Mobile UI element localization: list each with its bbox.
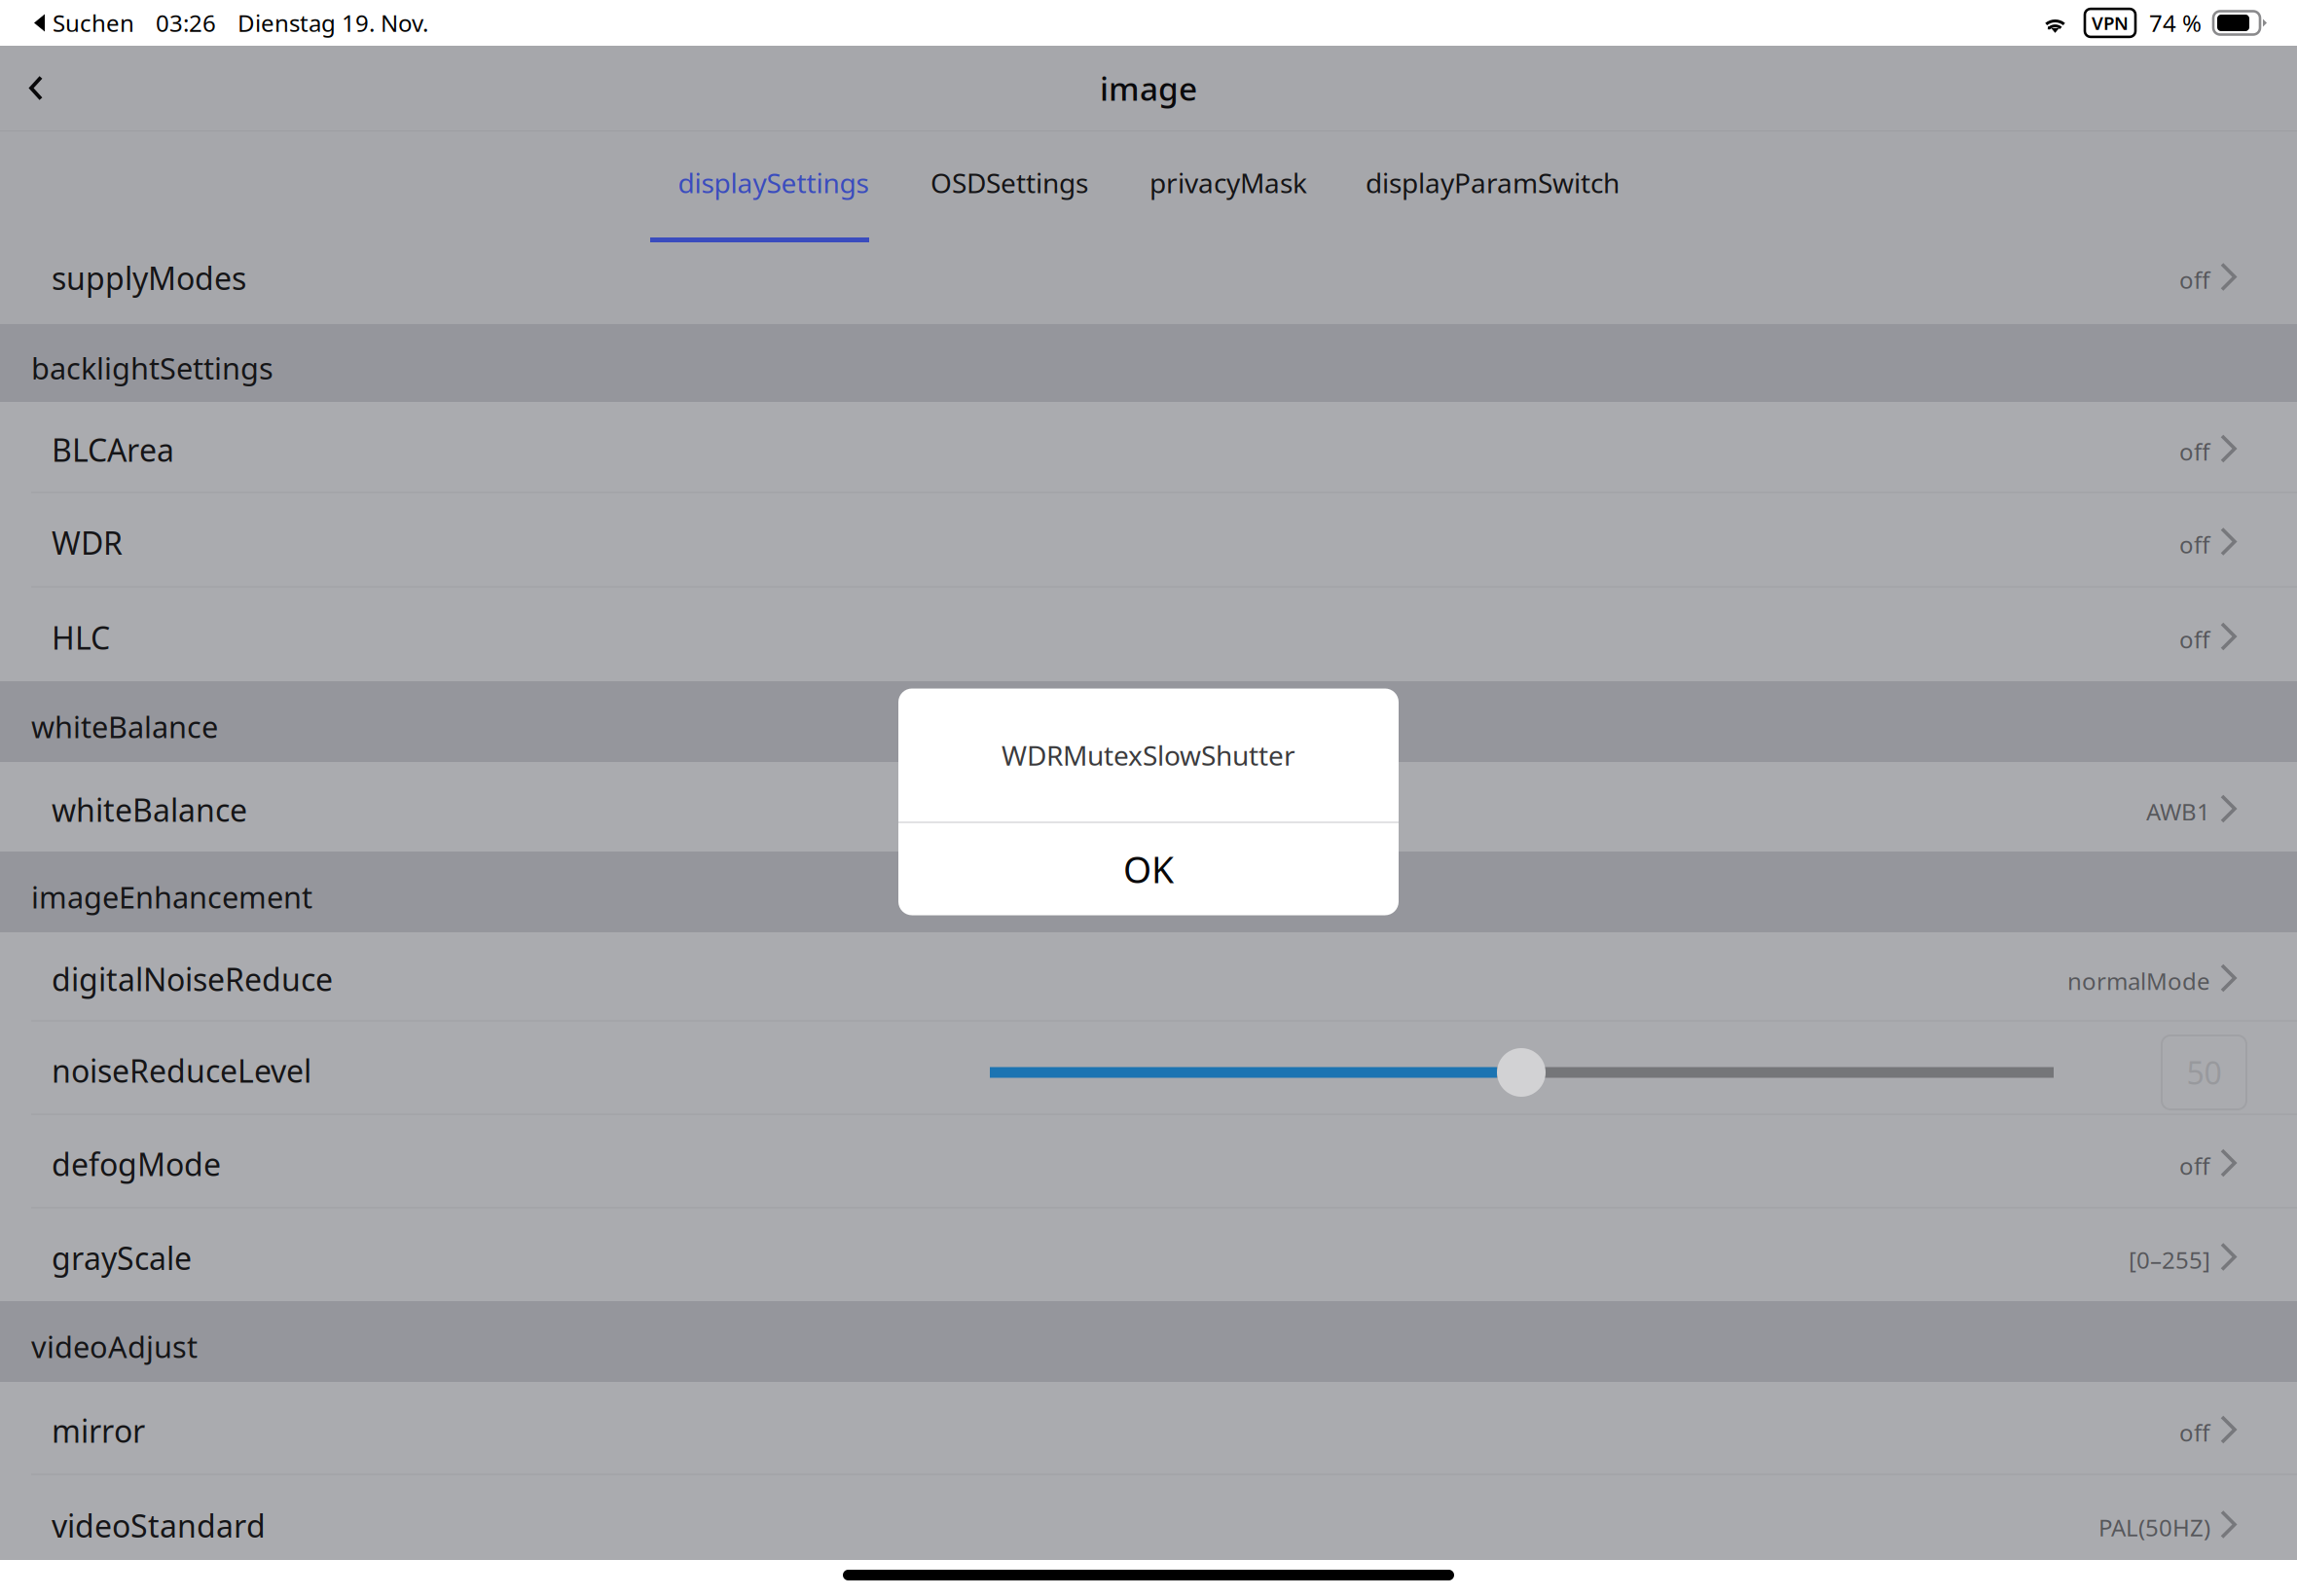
staticText: HLC: [52, 617, 110, 658]
button[interactable]: HLC: [0, 588, 2297, 681]
staticText: AWB1: [2146, 796, 2210, 827]
staticText: displaySettings: [678, 164, 869, 201]
staticText: VPN: [2092, 11, 2129, 35]
staticText: privacyMask: [1149, 164, 1307, 201]
staticText: off: [2179, 264, 2210, 295]
button[interactable]: WDR: [0, 493, 2297, 588]
staticText: BLCArea: [52, 429, 174, 470]
staticText: 74 %: [2149, 7, 2202, 38]
staticText: 03:26: [156, 7, 216, 38]
staticText: videoStandard: [52, 1505, 266, 1546]
button[interactable]: Back: [0, 46, 72, 130]
staticText: OSDSettings: [930, 164, 1088, 201]
staticText: image: [1100, 67, 1197, 110]
staticText: 50: [2187, 1052, 2222, 1093]
button[interactable]: displayParamSwitch: [1350, 131, 1635, 247]
staticText: off: [2179, 529, 2210, 560]
staticText: displayParamSwitch: [1366, 164, 1620, 201]
staticText: whiteBalance: [52, 789, 247, 830]
button[interactable]: supplyModes: [0, 247, 2297, 324]
staticText: Suchen: [53, 7, 134, 38]
button[interactable]: privacyMask: [1134, 131, 1323, 247]
button[interactable]: grayScale: [0, 1209, 2297, 1301]
button[interactable]: videoStandard: [0, 1475, 2297, 1560]
staticText: PAL(50HZ): [2098, 1512, 2210, 1543]
staticText: normalMode: [2067, 965, 2210, 997]
staticText: off: [2179, 436, 2210, 467]
staticText: digitalNoiseReduce: [52, 958, 333, 1000]
staticText: Dienstag 19. Nov.: [237, 7, 428, 38]
button[interactable]: BLCArea: [0, 402, 2297, 493]
staticText: WDRMutexSlowShutter: [1002, 737, 1295, 773]
staticText: whiteBalance: [31, 707, 218, 746]
staticText: noiseReduceLevel: [52, 1050, 311, 1091]
staticText: imageEnhancement: [31, 877, 312, 917]
staticText: backlightSettings: [31, 348, 273, 388]
button[interactable]: defogMode: [0, 1115, 2297, 1209]
button[interactable]: OSDSettings: [912, 131, 1107, 247]
staticText: videoAdjust: [31, 1327, 198, 1366]
staticText: OK: [1123, 845, 1174, 893]
button[interactable]: OK: [898, 823, 1399, 915]
staticText: off: [2179, 1150, 2210, 1181]
button[interactable]: whiteBalance: [0, 762, 2297, 852]
button[interactable]: digitalNoiseReduce: [0, 932, 2297, 1022]
staticText: grayScale: [52, 1237, 192, 1279]
button[interactable]: mirror: [0, 1382, 2297, 1475]
button[interactable]: displaySettings: [662, 131, 885, 247]
staticText: off: [2179, 624, 2210, 655]
staticText: WDR: [52, 522, 123, 563]
staticText: mirror: [52, 1410, 145, 1451]
staticText: supplyModes: [52, 257, 246, 299]
staticText: [0–255]: [2129, 1244, 2210, 1275]
staticText: defogMode: [52, 1143, 221, 1185]
staticText: off: [2179, 1417, 2210, 1448]
